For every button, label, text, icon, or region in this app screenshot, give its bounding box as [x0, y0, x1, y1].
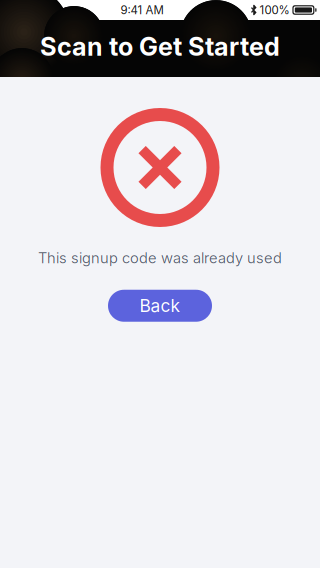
staticText: 100% [259, 3, 289, 17]
staticText: Scan to Get Started [40, 31, 280, 62]
staticText: This signup code was already used [38, 249, 282, 267]
button[interactable]: Back [108, 290, 212, 322]
staticText: 9:41 AM [120, 3, 163, 17]
staticText: Back [139, 295, 180, 316]
